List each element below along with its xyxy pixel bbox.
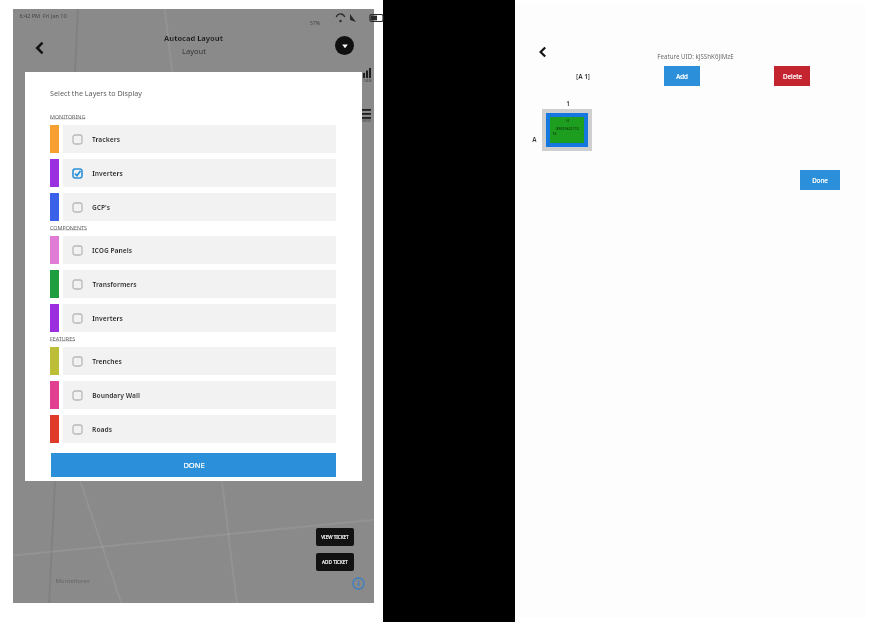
button[interactable]: Transformers bbox=[50, 270, 336, 298]
button[interactable]: H bbox=[542, 109, 592, 151]
staticText: Transformers bbox=[92, 280, 137, 289]
button[interactable]: Information bbox=[353, 578, 364, 589]
staticText: CAN bbox=[363, 78, 372, 83]
staticText: DONE bbox=[183, 460, 205, 470]
button[interactable]: Boundary Wall bbox=[50, 381, 336, 409]
staticText: Done bbox=[812, 176, 828, 184]
staticText: A bbox=[532, 135, 537, 143]
staticText: H bbox=[566, 118, 569, 123]
button[interactable]: ICOG Panels bbox=[50, 236, 336, 264]
staticText: Select the Layers to Display bbox=[50, 88, 142, 98]
staticText: WEB bbox=[362, 118, 371, 123]
button[interactable]: DONE bbox=[51, 453, 336, 477]
staticText: Feature UID: kJSShK6JlMzE bbox=[657, 52, 734, 60]
button[interactable]: Back bbox=[533, 42, 553, 62]
staticText: Inverters bbox=[92, 314, 123, 323]
staticText: MONITORING bbox=[50, 113, 86, 120]
staticText: FEATURES bbox=[50, 335, 76, 342]
button[interactable]: ADD TICKET bbox=[316, 553, 354, 571]
staticText: GCP's bbox=[92, 203, 110, 212]
staticText: Layout bbox=[182, 46, 206, 56]
button[interactable]: Add bbox=[664, 66, 700, 86]
staticText: Inverters bbox=[92, 169, 123, 178]
button[interactable]: Inverters bbox=[50, 159, 336, 187]
staticText: ICOG Panels bbox=[92, 246, 132, 255]
button[interactable]: VIEW TICKET bbox=[316, 528, 354, 546]
button[interactable]: Inverters bbox=[50, 304, 336, 332]
staticText: Montefiores bbox=[55, 577, 90, 585]
staticText: VIEW TICKET bbox=[321, 534, 349, 540]
staticText: 89029422112 bbox=[556, 126, 579, 131]
button[interactable]: Trenches bbox=[50, 347, 336, 375]
button[interactable]: Back bbox=[27, 35, 53, 61]
staticText: ADD TICKET bbox=[322, 559, 348, 565]
staticText: COMPONENTS bbox=[50, 224, 88, 231]
staticText: Delete bbox=[783, 72, 802, 80]
staticText: 1 bbox=[566, 99, 570, 107]
button[interactable]: Roads bbox=[50, 415, 336, 443]
staticText: Boundary Wall bbox=[92, 391, 140, 400]
staticText: 57% bbox=[310, 20, 320, 27]
staticText: Autocad Layout bbox=[164, 33, 223, 43]
staticText: Add bbox=[676, 72, 688, 80]
button[interactable]: Expand options bbox=[335, 36, 354, 55]
button[interactable]: GCP's bbox=[50, 193, 336, 221]
staticText: Trenches bbox=[92, 357, 122, 366]
staticText: 16 bbox=[552, 131, 557, 136]
button[interactable]: Delete bbox=[774, 66, 810, 86]
button[interactable]: Trackers bbox=[50, 125, 336, 153]
staticText: 6:42 PM Fri Jan 10 bbox=[19, 12, 67, 19]
staticText: Trackers bbox=[92, 135, 120, 144]
staticText: [A 1] bbox=[576, 72, 590, 81]
staticText: Roads bbox=[92, 425, 112, 434]
button[interactable]: Done bbox=[800, 170, 840, 190]
